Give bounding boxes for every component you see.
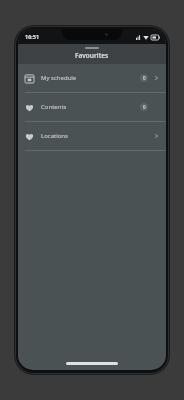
staticText: Locations (41, 132, 140, 140)
button[interactable]: Contents (18, 93, 166, 121)
staticText: My schedule (41, 74, 140, 82)
button[interactable]: My schedule (18, 64, 166, 92)
button[interactable]: Locations (18, 122, 166, 150)
staticText: Favourites (75, 51, 109, 60)
staticText: Contents (41, 103, 140, 111)
staticText: 0 (143, 104, 146, 110)
staticText: 0 (143, 75, 146, 81)
staticText: 16:51 (25, 33, 40, 40)
